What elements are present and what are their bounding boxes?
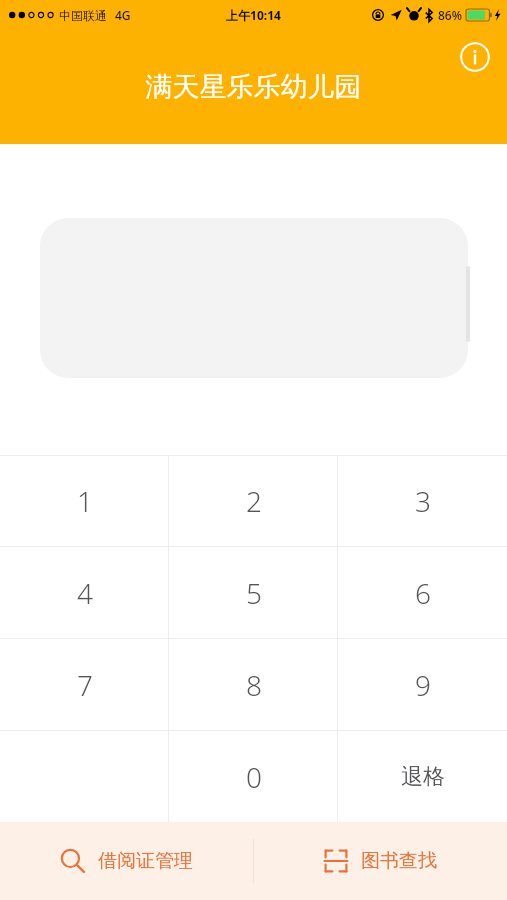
staticText: 7 [77,666,93,704]
button[interactable]: 0 [169,731,338,822]
staticText: 上午10:14 [226,7,281,23]
button[interactable]: 2 [169,456,338,546]
staticText: 9 [415,666,431,704]
staticText: 中国联通 [59,8,107,23]
staticText: 1 [77,482,93,520]
staticText: 图书查找 [361,849,437,873]
staticText: 0 [246,758,262,796]
button[interactable]: 3 [338,456,507,546]
button[interactable]: 1 [0,456,169,546]
button[interactable]: 6 [338,547,507,638]
staticText: 4G [115,7,131,23]
button[interactable]: 借阅证管理 [0,822,253,900]
staticText: 3 [415,482,431,520]
button[interactable]: Information [453,35,497,79]
button[interactable]: 5 [169,547,338,638]
staticText: 借阅证管理 [98,849,193,873]
button[interactable]: 7 [0,639,169,730]
button[interactable]: 8 [169,639,338,730]
button[interactable]: 图书查找 [253,822,507,900]
staticText: 8 [246,666,262,704]
staticText: 退格 [401,763,445,791]
staticText: 2 [246,482,262,520]
button[interactable]: 4 [0,547,169,638]
staticText: 4 [77,574,93,612]
button[interactable]: 9 [338,639,507,730]
staticText: 满天星乐乐幼儿园 [56,70,451,104]
staticText: 86% [438,7,462,23]
staticText: 6 [415,574,431,612]
button[interactable]: 退格 [338,731,507,822]
staticText: 5 [246,574,262,612]
